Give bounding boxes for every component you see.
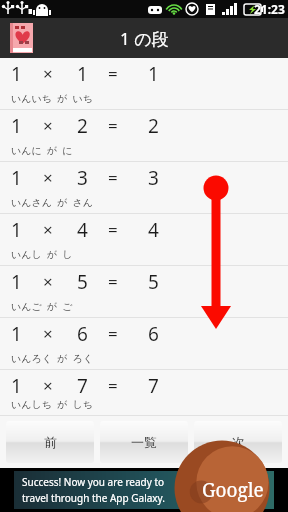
staticText: × bbox=[43, 374, 53, 397]
button[interactable]: 1 bbox=[0, 110, 288, 162]
staticText: 前 bbox=[44, 434, 57, 450]
staticText: 6 bbox=[148, 321, 159, 347]
button[interactable]: 前 bbox=[6, 421, 94, 463]
button[interactable]: 1 bbox=[0, 214, 288, 266]
other: App icon bbox=[10, 23, 33, 53]
staticText: 1 bbox=[11, 113, 22, 139]
staticText: = bbox=[108, 322, 118, 345]
staticText: 1 bbox=[77, 61, 88, 87]
staticText: 一覧 bbox=[131, 434, 157, 450]
button[interactable]: 1 bbox=[0, 266, 288, 318]
staticText: 3 bbox=[77, 165, 88, 191]
button[interactable]: Success! Now you are ready to bbox=[14, 471, 274, 509]
button[interactable]: 一覧 bbox=[100, 421, 188, 463]
staticText: いんいち が いち bbox=[11, 91, 94, 105]
staticText: 1 の段 bbox=[120, 27, 169, 50]
staticText: Success! Now you are ready to bbox=[22, 475, 165, 489]
staticText: × bbox=[43, 114, 53, 137]
staticText: = bbox=[108, 62, 118, 85]
staticText: = bbox=[108, 374, 118, 397]
staticText: × bbox=[43, 322, 53, 345]
button[interactable]: 1 bbox=[0, 370, 288, 416]
staticText: = bbox=[108, 218, 118, 241]
staticText: 次 bbox=[232, 434, 245, 450]
staticText: 6 bbox=[77, 321, 88, 347]
staticText: travel through the App Galaxy. bbox=[22, 491, 165, 505]
staticText: × bbox=[43, 166, 53, 189]
staticText: 7 bbox=[148, 373, 159, 397]
staticText: 7 bbox=[77, 373, 88, 397]
button[interactable]: 1 bbox=[0, 58, 288, 110]
staticText: 2 bbox=[148, 113, 159, 139]
staticText: いんご が ご bbox=[11, 299, 73, 313]
staticText: 1 bbox=[11, 321, 22, 347]
staticText: 1 bbox=[11, 165, 22, 191]
staticText: いんし が し bbox=[11, 247, 73, 261]
staticText: 5 bbox=[77, 269, 88, 295]
staticText: いんさん が さん bbox=[11, 195, 94, 209]
staticText: × bbox=[43, 218, 53, 241]
staticText: = bbox=[108, 270, 118, 293]
staticText: Google bbox=[202, 477, 264, 503]
staticText: いんしち が しち bbox=[11, 397, 94, 411]
staticText: 1 bbox=[148, 61, 159, 87]
staticText: 2 bbox=[77, 113, 88, 139]
staticText: 21:23 bbox=[254, 1, 285, 17]
button[interactable]: 1 bbox=[0, 162, 288, 214]
staticText: いんに が に bbox=[11, 143, 73, 157]
staticText: 3 bbox=[148, 165, 159, 191]
staticText: 1 bbox=[11, 61, 22, 87]
staticText: 4 bbox=[77, 217, 88, 243]
staticText: 1 bbox=[11, 269, 22, 295]
staticText: = bbox=[108, 166, 118, 189]
button[interactable]: 1 bbox=[0, 318, 288, 370]
staticText: = bbox=[108, 114, 118, 137]
staticText: 4 bbox=[148, 217, 159, 243]
staticText: いんろく が ろく bbox=[11, 351, 94, 365]
staticText: × bbox=[43, 62, 53, 85]
staticText: 1 bbox=[11, 217, 22, 243]
staticText: 1 bbox=[11, 373, 22, 397]
button[interactable]: 次 bbox=[194, 421, 282, 463]
staticText: 5 bbox=[148, 269, 159, 295]
staticText: × bbox=[43, 270, 53, 293]
